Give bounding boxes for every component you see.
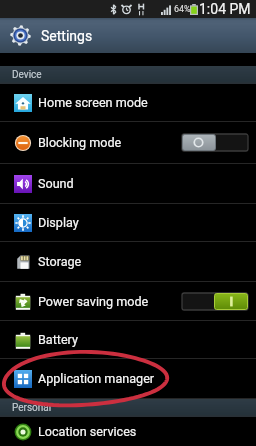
staticText: Device bbox=[12, 69, 42, 81]
staticText: Settings bbox=[41, 28, 93, 44]
button[interactable]: Power saving mode bbox=[0, 282, 256, 321]
staticText: Application manager bbox=[38, 371, 155, 386]
button[interactable]: Storage bbox=[0, 242, 256, 282]
button[interactable]: Location services bbox=[0, 417, 256, 446]
staticText: Location services bbox=[38, 424, 137, 439]
staticText: Sound bbox=[38, 176, 74, 191]
staticText: Display bbox=[38, 215, 79, 230]
staticText: 1:04 PM bbox=[199, 1, 251, 17]
staticText: Storage bbox=[38, 254, 82, 269]
button[interactable]: Settings bbox=[0, 18, 256, 53]
button[interactable]: Application manager bbox=[0, 359, 256, 399]
staticText: Home screen mode bbox=[38, 95, 148, 110]
button[interactable]: Blocking mode bbox=[0, 122, 256, 164]
staticText: 64% bbox=[174, 4, 191, 15]
staticText: Power saving mode bbox=[38, 294, 149, 309]
button[interactable]: Switch on bbox=[182, 293, 248, 310]
staticText: Blocking mode bbox=[38, 135, 122, 150]
button[interactable]: Display bbox=[0, 204, 256, 242]
button[interactable]: Battery bbox=[0, 321, 256, 359]
staticText: Personal bbox=[12, 402, 52, 414]
button[interactable]: Sound bbox=[0, 164, 256, 204]
staticText: Battery bbox=[38, 332, 78, 347]
button[interactable]: Home screen mode bbox=[0, 84, 256, 122]
button[interactable]: Switch off bbox=[182, 134, 248, 151]
